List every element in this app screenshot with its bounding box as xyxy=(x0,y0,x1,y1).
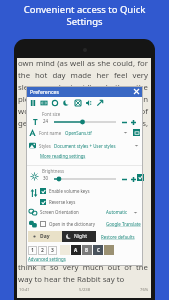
button[interactable]: Restore defaults xyxy=(101,234,135,240)
staticText: Open in the dictionary xyxy=(49,221,95,227)
staticText: 10:41 xyxy=(19,287,30,293)
staticText: OpenSans.ttf xyxy=(65,130,92,136)
staticText: Restore defaults xyxy=(101,234,135,240)
button[interactable]: 1 xyxy=(28,246,37,255)
button[interactable]: Night mode xyxy=(61,98,71,108)
button[interactable]: Advanced settings xyxy=(28,256,66,262)
button[interactable]: Screen Orientation xyxy=(26,206,143,218)
button[interactable]: Font name xyxy=(26,126,143,139)
staticText: Screen Orientation xyxy=(40,209,79,215)
staticText: Enable volume keys xyxy=(49,188,90,194)
staticText: 1 xyxy=(31,247,34,254)
staticText: 2 xyxy=(41,247,44,254)
button[interactable]: Increase xyxy=(129,118,137,126)
button[interactable] xyxy=(137,174,144,181)
button[interactable]: Screen xyxy=(73,98,83,108)
staticText: Brightness xyxy=(42,168,65,174)
staticText: Preferences xyxy=(30,88,59,95)
button[interactable]: A xyxy=(71,245,81,255)
button[interactable]: Library xyxy=(28,98,38,108)
staticText: 76% xyxy=(140,287,149,293)
staticText: Document styles + User styles xyxy=(54,143,116,149)
button[interactable]: Styles xyxy=(26,139,143,152)
button[interactable]: Search xyxy=(50,98,60,108)
staticText: Convenient access to Quick Settings xyxy=(0,3,169,28)
staticText: Google Translate xyxy=(106,221,141,227)
button[interactable]: Table of contents xyxy=(39,98,49,108)
button[interactable]: Day xyxy=(28,231,62,242)
button[interactable]: Increase xyxy=(129,175,137,183)
staticText: Day xyxy=(40,233,50,240)
staticText: 5/238 xyxy=(79,287,91,293)
button[interactable]: Full screen xyxy=(95,98,105,108)
button[interactable]: Night xyxy=(62,231,96,242)
staticText: Night xyxy=(74,233,88,240)
staticText: B xyxy=(85,247,89,253)
button[interactable]: Decrease xyxy=(120,118,128,126)
button[interactable]: Text to speech xyxy=(84,98,94,108)
button[interactable]: Enable volume keys xyxy=(40,185,90,196)
staticText: T xyxy=(33,116,38,125)
staticText: Advanced settings xyxy=(28,256,66,262)
button[interactable]: More reading settings xyxy=(40,153,86,159)
staticText: Font name xyxy=(39,130,62,136)
button[interactable]: Close xyxy=(132,87,141,96)
staticText: Styles xyxy=(39,143,51,149)
staticText: own mind (as well as she could, for the … xyxy=(18,58,148,128)
button[interactable]: Reverse keys xyxy=(40,196,76,207)
button[interactable]: Preferences xyxy=(26,86,143,97)
button[interactable]: Open in the dictionary xyxy=(26,218,143,230)
button[interactable]: Decrease xyxy=(120,175,128,183)
staticText: C xyxy=(97,247,100,253)
button[interactable]: B xyxy=(82,245,92,255)
staticText: think it so very much out of the way to … xyxy=(18,262,148,284)
staticText: Reverse keys xyxy=(49,199,76,205)
staticText: Automatic xyxy=(106,209,128,215)
staticText: Font size xyxy=(42,111,61,117)
button[interactable]: C xyxy=(93,245,103,255)
staticText: 3 xyxy=(51,247,54,254)
button[interactable]: 3 xyxy=(48,246,57,255)
button[interactable]: 2 xyxy=(38,246,47,255)
staticText: 24 xyxy=(43,118,49,124)
staticText: A xyxy=(74,247,78,253)
staticText: 30 xyxy=(43,175,49,181)
staticText: More reading settings xyxy=(40,153,86,159)
